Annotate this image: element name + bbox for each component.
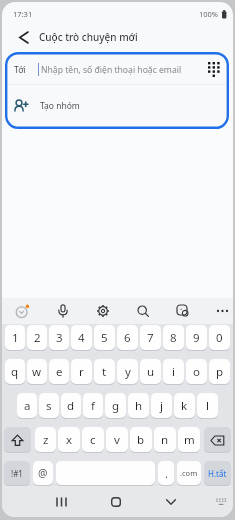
button[interactable]: 1 [5,325,25,351]
button[interactable]: 5 [94,325,115,351]
staticText: q [11,364,19,380]
staticText: d [67,398,75,414]
staticText: 8 [170,330,177,346]
button[interactable] [208,62,221,77]
staticText: m [184,432,195,448]
staticText: b [137,432,145,448]
button[interactable]: !#1 [4,461,30,486]
button[interactable]: 2 [27,325,47,351]
button[interactable]: 3 [49,325,69,351]
staticText: . [165,466,168,481]
button[interactable]: e [49,359,69,385]
button[interactable]: 9 [186,325,207,351]
staticText: 9 [193,330,200,346]
staticText: Cuộc trò chuyện mới [39,30,138,44]
staticText: 0 [216,330,223,346]
staticText: h [135,398,143,414]
staticText: Nhập tên, số điện thoại hoặc email [41,64,182,76]
button[interactable]: x [58,427,80,453]
button[interactable]: Tạo nhóm [14,85,226,126]
button[interactable]: n [154,427,176,453]
button[interactable] [216,304,229,318]
button[interactable]: 8 [163,325,184,351]
staticText: 3 [56,330,63,346]
button[interactable] [50,491,72,513]
staticText: v [114,432,120,448]
staticText: 5 [101,330,108,346]
staticText: i [172,364,175,380]
button[interactable]: 7 [140,325,161,351]
staticText: u [147,364,155,380]
button[interactable]: .com [177,461,201,486]
button[interactable] [96,304,110,318]
staticText: p [216,364,224,380]
button[interactable]: t [94,359,115,385]
button[interactable] [105,491,127,513]
button[interactable]: k [174,393,195,419]
button[interactable] [11,25,35,49]
staticText: Tạo nhóm [40,100,80,112]
button[interactable]: z [35,427,56,453]
button[interactable]: w [27,359,47,385]
button[interactable] [136,304,150,318]
staticText: 1 [12,330,19,346]
button[interactable]: r [71,359,92,385]
button[interactable]: q [5,359,25,385]
button[interactable]: h [128,393,149,419]
staticText: 2 [34,330,41,346]
staticText: a [24,398,31,414]
staticText: 100% [199,9,219,19]
button[interactable]: H.tất [204,461,231,486]
button[interactable] [4,427,31,453]
staticText: s [46,398,52,414]
button[interactable]: @ [33,461,53,486]
button[interactable]: l [197,393,218,419]
staticText: e [56,364,63,380]
staticText: z [43,432,49,448]
staticText: @ [38,466,48,480]
button[interactable]: p [209,359,230,385]
staticText: j [160,398,163,414]
staticText: Tới [14,64,26,76]
staticText: 4 [78,330,85,346]
button[interactable]: 0 [209,325,230,351]
button[interactable]: g [105,393,126,419]
staticText: !#1 [11,468,23,479]
button[interactable]: y [117,359,138,385]
button[interactable]: . [158,461,174,486]
button[interactable]: v [106,427,128,453]
button[interactable] [56,461,155,486]
button[interactable]: m [178,427,200,453]
staticText: k [181,398,188,414]
staticText: t [102,364,107,380]
button[interactable] [56,304,70,318]
button[interactable]: u [140,359,161,385]
staticText: n [161,432,169,448]
button[interactable]: d [61,393,81,419]
button[interactable]: i [163,359,184,385]
button[interactable] [160,491,182,513]
button[interactable]: j [151,393,172,419]
button[interactable]: 6 [117,325,138,351]
staticText: y [125,364,131,380]
staticText: o [193,364,200,380]
button[interactable]: s [39,393,59,419]
button[interactable]: f [83,393,103,419]
staticText: 7 [147,330,154,346]
staticText: l [206,398,209,414]
staticText: 17:31 [13,9,33,19]
staticText: f [91,398,95,414]
button[interactable] [204,427,231,453]
button[interactable]: 4 [71,325,92,351]
staticText: H.tất [208,468,227,479]
button[interactable] [176,304,190,318]
button[interactable]: o [186,359,207,385]
staticText: x [66,432,73,448]
button[interactable]: b [130,427,152,453]
button[interactable] [212,493,230,511]
button[interactable]: a [17,393,37,419]
staticText: r [79,364,84,380]
button[interactable] [15,304,30,319]
staticText: g [112,398,120,414]
button[interactable]: c [82,427,104,453]
